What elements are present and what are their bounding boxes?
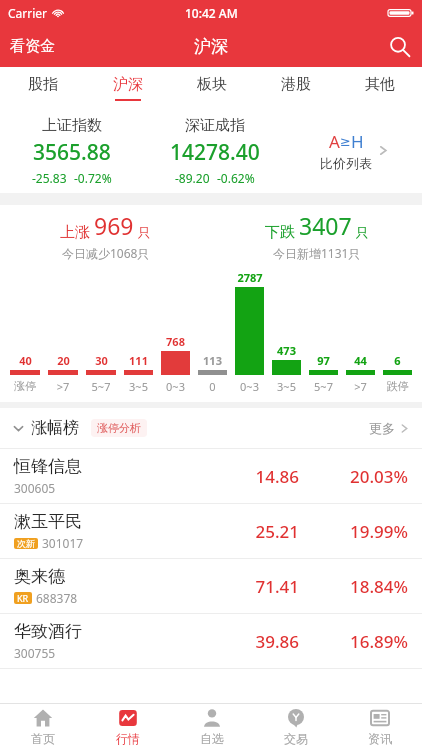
staticText: 首页 [31,731,55,746]
button[interactable]: 768 [157,265,194,375]
staticText: 只 [134,223,151,241]
button[interactable]: 6 [379,265,416,375]
staticText: 今日减少1068只 [62,245,150,261]
staticText: 19.99% [313,520,408,543]
button[interactable]: 行情 [85,703,170,750]
staticText: 768 [166,334,185,349]
staticText: 沪深 [194,36,228,57]
staticText: -89.20 [175,170,210,186]
staticText: -0.62% [217,170,255,186]
button[interactable]: 其他 [338,67,422,108]
staticText: 20.03% [313,465,408,488]
staticText: 港股 [281,75,311,94]
staticText: 40 [19,353,32,368]
button[interactable]: 自选 [170,703,254,750]
staticText: 6 [394,353,401,368]
staticText: 113 [203,353,222,368]
button[interactable]: 2787 [231,265,268,375]
staticText: 5~7 [305,379,342,394]
staticText: 看资金 [10,37,55,56]
button[interactable]: 20 [44,265,82,375]
button[interactable]: 奥来德 [0,559,422,614]
staticText: 只 [352,223,369,241]
staticText: 涨幅榜 [31,418,79,438]
staticText: 交易 [284,731,308,746]
staticText: 0~3 [231,379,268,394]
button[interactable]: 上证指数 [0,108,143,193]
staticText: 涨停 [6,379,44,393]
staticText: 16.89% [313,630,408,653]
staticText: 奥来德 [14,566,65,587]
button[interactable]: Search [377,30,422,63]
staticText: -25.83 [32,170,67,186]
staticText: 涨停分析 [97,421,141,435]
button[interactable]: 40 [6,265,44,375]
staticText: 股指 [28,75,58,94]
button[interactable]: 44 [342,265,379,375]
staticText: 44 [354,353,367,368]
button[interactable]: 113 [194,265,231,375]
button[interactable]: 交易 [254,703,338,750]
staticText: 14.86 [204,465,299,488]
staticText: 30 [95,353,108,368]
staticText: 0 [194,379,231,394]
button[interactable]: 港股 [254,67,338,108]
button[interactable]: 股指 [0,67,85,108]
button[interactable]: 深证成指 [143,108,286,193]
staticText: Carrier [8,5,48,21]
button[interactable]: 97 [305,265,342,375]
staticText: 3407 [299,210,352,241]
staticText: 5~7 [82,379,120,394]
staticText: 300605 [14,480,56,496]
staticText: 111 [129,353,148,368]
button[interactable]: 473 [268,265,305,375]
staticText: 比价列表 [320,155,372,171]
staticText: 473 [277,343,296,358]
staticText: 上涨 [60,221,94,241]
staticText: 3565.88 [33,138,111,167]
button[interactable]: 板块 [170,67,254,108]
button[interactable]: 涨停分析 [91,419,147,437]
staticText: 18.84% [313,575,408,598]
staticText: 14278.40 [170,138,260,167]
staticText: 20 [57,353,70,368]
staticText: >7 [342,379,379,394]
staticText: 301017 [42,535,84,551]
staticText: 2787 [237,270,263,285]
staticText: 深证成指 [185,116,245,135]
button[interactable]: 更多 [369,420,410,436]
button[interactable]: A [286,108,422,193]
staticText: 0~3 [157,379,194,394]
staticText: 次新 [17,538,35,549]
staticText: 自选 [200,731,224,746]
button[interactable]: 资讯 [338,703,422,750]
button[interactable]: 华致酒行 [0,614,422,669]
staticText: 10:42 AM [185,5,238,21]
button[interactable]: 上涨 [0,205,211,265]
staticText: 969 [94,210,134,241]
button[interactable]: 涨幅榜 [12,418,79,438]
staticText: H [351,130,364,153]
staticText: 97 [317,353,330,368]
button[interactable]: 首页 [0,703,85,750]
button[interactable]: 30 [82,265,120,375]
staticText: 华致酒行 [14,621,82,642]
button[interactable]: 沪深 [85,67,170,108]
button[interactable]: 漱玉平民 [0,504,422,559]
staticText: 沪深 [113,75,143,94]
staticText: 更多 [369,420,395,436]
staticText: KR [17,592,29,604]
staticText: A [329,130,340,153]
staticText: 上证指数 [42,116,102,135]
staticText: 行情 [116,731,140,746]
staticText: 恒锋信息 [14,456,82,477]
staticText: 25.21 [204,520,299,543]
button[interactable]: 下跌 [211,205,422,265]
button[interactable]: 111 [120,265,157,375]
button[interactable]: 看资金 [0,31,65,62]
staticText: ≥ [340,134,351,149]
staticText: 下跌 [265,221,299,241]
button[interactable]: 恒锋信息 [0,449,422,504]
staticText: 300755 [14,645,56,661]
staticText: 今日新增1131只 [273,245,361,261]
